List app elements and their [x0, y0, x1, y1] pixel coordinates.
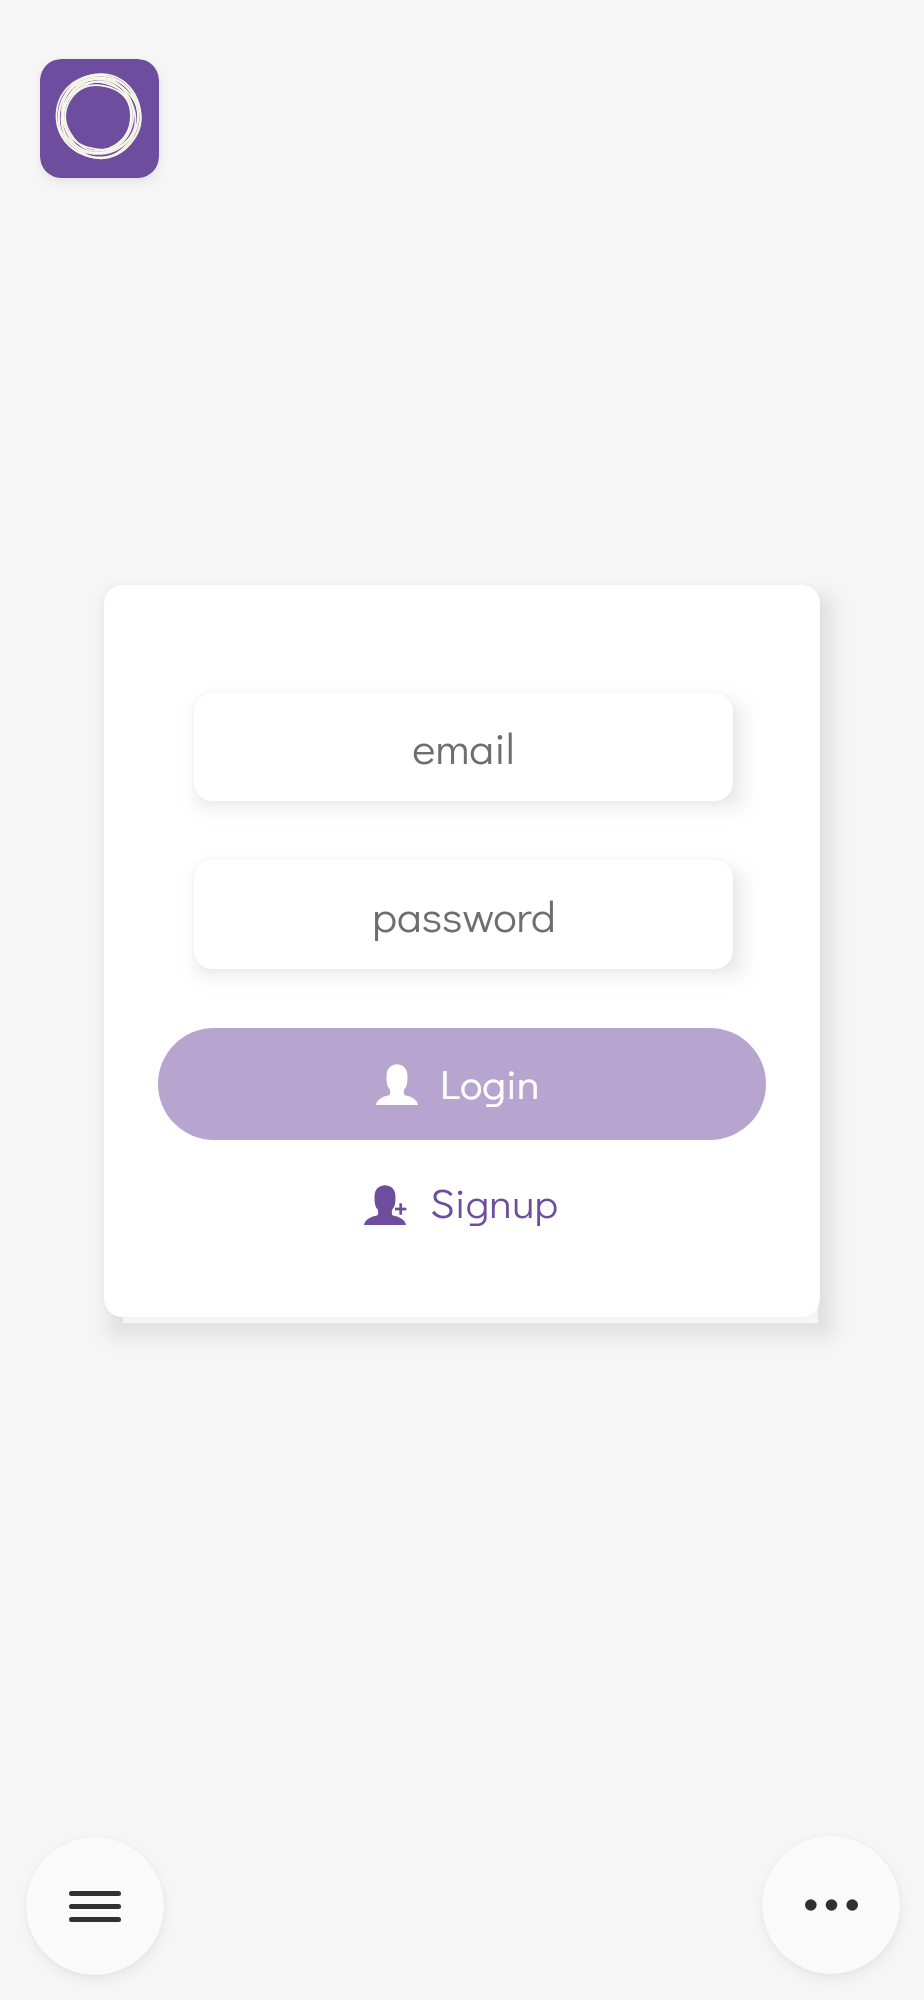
staticText: password [372, 886, 556, 944]
staticText: email [412, 718, 515, 776]
button[interactable]: Login [158, 1028, 766, 1140]
button[interactable]: More options [762, 1836, 900, 1974]
button[interactable]: email [194, 693, 733, 801]
staticText: Login [440, 1055, 540, 1110]
button[interactable]: Signup [364, 1172, 558, 1236]
button[interactable]: Menu [26, 1837, 164, 1975]
staticText: Signup [430, 1174, 558, 1229]
button[interactable]: password [194, 860, 733, 969]
button[interactable]: App logo [40, 59, 159, 178]
